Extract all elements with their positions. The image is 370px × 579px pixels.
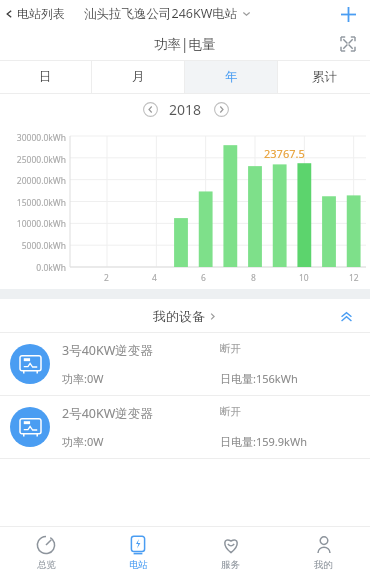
staticText: 10000.0kWh [0,218,66,230]
staticText: 日电量:159.9kWh [220,434,307,449]
staticText: 2 [104,272,109,284]
button[interactable]: Fullscreen [336,32,360,56]
staticText: 2号40KW逆变器 [62,405,220,422]
button[interactable]: 电站列表 [0,6,69,21]
staticText: 服务 [221,559,240,571]
staticText: 我的 [314,559,333,571]
staticText: 23767.5 [264,146,305,161]
button[interactable]: 我的设备 [153,308,217,324]
staticText: 2018 [169,100,202,119]
staticText: 8 [251,272,256,284]
button[interactable]: 累计 [278,61,370,93]
button[interactable]: 日 [0,61,91,93]
staticText: 月 [132,69,145,85]
button[interactable]: 汕头拉飞逸公司246KW电站 [84,5,251,22]
staticText: 年 [225,69,238,85]
staticText: 25000.0kWh [0,154,66,166]
staticText: 我的设备 [153,308,205,324]
staticText: 功率:0W [62,371,220,386]
staticText: 功率:0W [62,434,220,449]
staticText: 12 [349,272,359,284]
staticText: 6 [201,272,206,284]
button[interactable]: Collapse [334,304,358,328]
staticText: 15000.0kWh [0,197,66,209]
button[interactable]: Previous year [139,98,161,120]
staticText: 断开 [220,342,241,355]
staticText: 总览 [37,559,56,571]
button[interactable]: 2号40KW逆变器 [0,396,370,458]
button[interactable]: 电站 [92,527,184,579]
staticText: 日 [39,69,52,85]
button[interactable]: 服务 [184,527,277,579]
staticText: 5000.0kWh [0,240,66,252]
staticText: 电站列表 [17,6,65,21]
staticText: 汕头拉飞逸公司246KW电站 [84,5,238,22]
staticText: 20000.0kWh [0,175,66,187]
button[interactable]: 我的 [277,527,370,579]
staticText: 累计 [312,69,337,85]
staticText: 30000.0kWh [0,132,66,144]
staticText: 3号40KW逆变器 [62,342,220,359]
button[interactable]: 月 [92,61,184,93]
staticText: 电站 [129,559,148,571]
staticText: 10 [299,272,309,284]
button[interactable]: 年 [185,61,277,93]
button[interactable]: Add [336,2,360,26]
button[interactable]: 总览 [0,527,92,579]
staticText: 日电量:156kWh [220,371,298,386]
staticText: 0.0kWh [0,262,66,274]
staticText: 功率|电量 [154,35,216,53]
button[interactable]: Next year [210,98,232,120]
staticText: 4 [152,272,157,284]
staticText: 断开 [220,405,241,418]
button[interactable]: 3号40KW逆变器 [0,333,370,395]
